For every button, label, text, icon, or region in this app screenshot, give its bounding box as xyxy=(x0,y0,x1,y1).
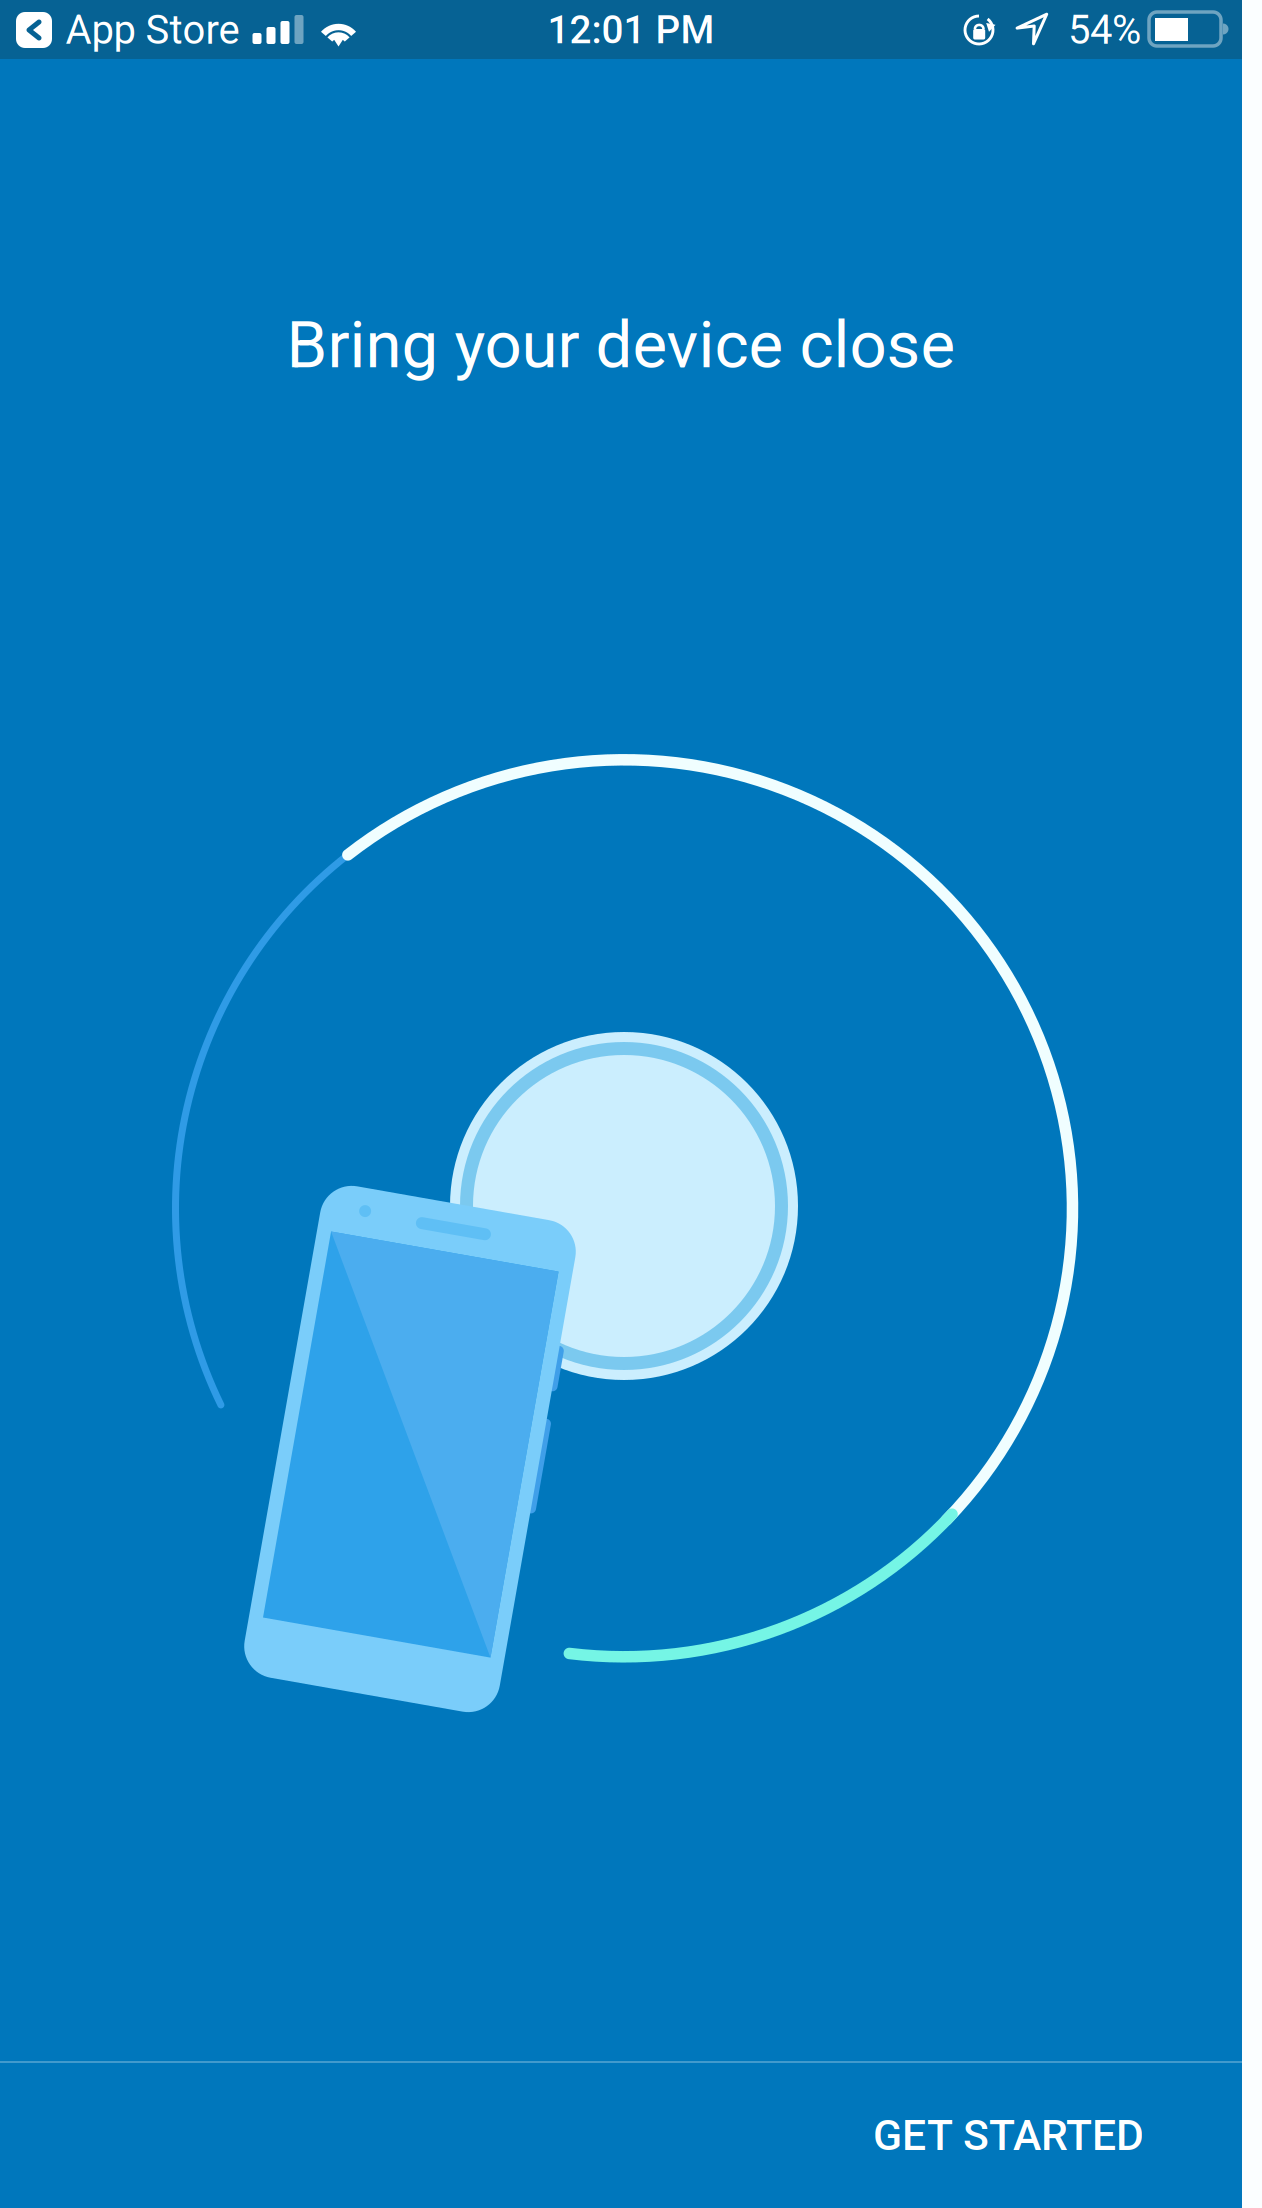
button[interactable]: Back to App Store xyxy=(13,11,243,49)
button[interactable]: GET STARTED xyxy=(0,2063,1242,2208)
staticText: Bring your device close xyxy=(286,307,955,383)
staticText: 54% xyxy=(1068,7,1141,53)
staticText: GET STARTED xyxy=(873,2110,1144,2160)
staticText: 12:01 PM xyxy=(547,7,714,53)
staticText: App Store xyxy=(65,7,239,53)
